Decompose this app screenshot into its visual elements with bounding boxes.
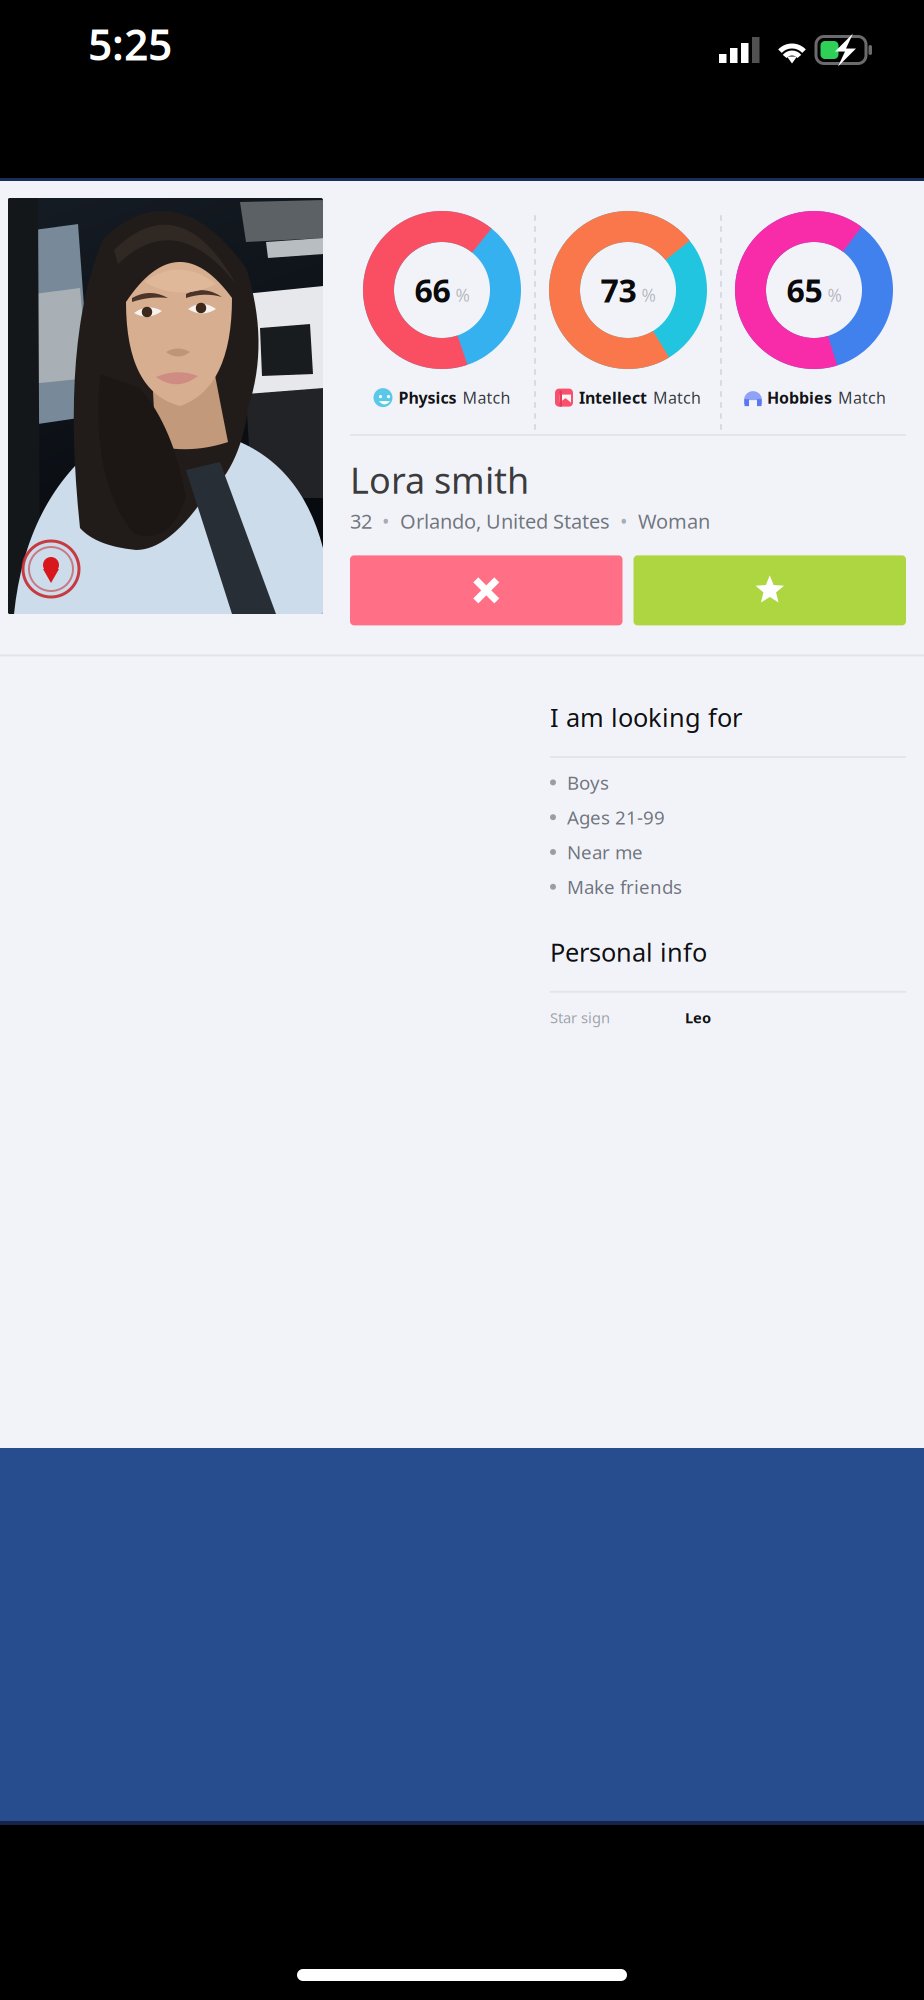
- staticText: %: [455, 283, 469, 306]
- staticText: %: [827, 283, 841, 306]
- staticText: Woman: [638, 508, 710, 534]
- staticText: Boys: [567, 770, 609, 795]
- staticText: Ages 21-99: [567, 805, 665, 830]
- staticText: Leo: [685, 1008, 711, 1027]
- staticText: Hobbies: [767, 387, 832, 408]
- staticText: •: [372, 508, 400, 534]
- staticText: Match: [653, 387, 701, 408]
- staticText: I am looking for: [550, 700, 742, 734]
- staticText: %: [641, 283, 655, 306]
- staticText: 66: [414, 269, 450, 311]
- button[interactable]: Pass: [350, 555, 622, 625]
- staticText: Lora smith: [350, 456, 529, 504]
- staticText: Match: [838, 387, 886, 408]
- staticText: 73: [600, 269, 636, 311]
- staticText: Orlando, United States: [400, 508, 610, 534]
- staticText: Near me: [567, 840, 643, 864]
- staticText: 32: [350, 508, 372, 534]
- staticText: •: [610, 508, 638, 534]
- staticText: Personal info: [550, 935, 707, 969]
- staticText: Intellect: [579, 387, 647, 408]
- staticText: Match: [462, 387, 510, 408]
- staticText: Star sign: [550, 1008, 610, 1027]
- staticText: 65: [786, 269, 822, 311]
- staticText: Physics: [398, 387, 456, 408]
- staticText: Make friends: [567, 874, 682, 899]
- button[interactable]: Favourite: [633, 555, 906, 625]
- staticText: 5:25: [88, 16, 172, 72]
